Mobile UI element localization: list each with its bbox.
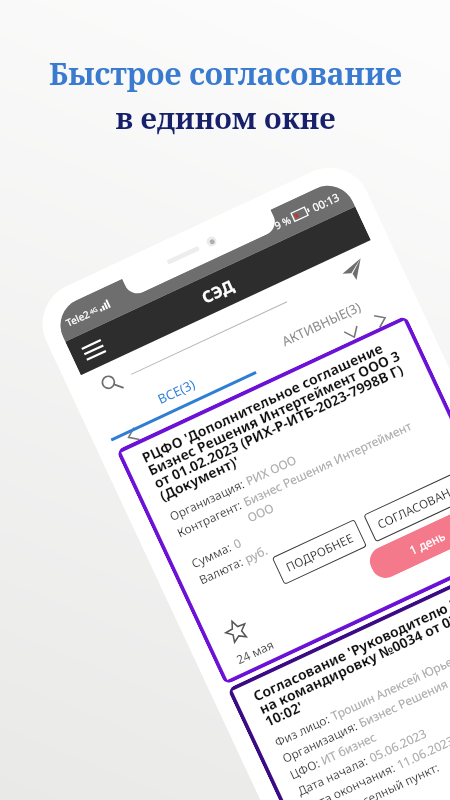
staticText: Дата окончания:: [302, 759, 398, 800]
staticText: Валюта:: [196, 553, 246, 588]
staticText: Город, населный пункт:: [310, 758, 442, 800]
staticText: 05.06.2023: [364, 725, 429, 767]
button[interactable]: АКТИВНЫЕ(3): [243, 276, 400, 371]
staticText: Контрагент:: [174, 496, 244, 540]
staticText: ПОДРОБНЕЕ: [283, 529, 356, 575]
staticText: АКТИВНЫЕ(3): [279, 297, 364, 350]
button[interactable]: Search: [98, 370, 124, 397]
button[interactable]: Согласование 'Руководителю 'Заявка на ко…: [232, 559, 450, 800]
staticText: 0: [228, 534, 243, 553]
button[interactable]: ПОДРОБНЕЕ: [272, 519, 367, 585]
staticText: 1 день: [406, 527, 448, 558]
staticText: 24 мая: [233, 636, 276, 667]
staticText: Трошин Алексей Юрьевич: [325, 644, 450, 725]
staticText: Бизнес Решения Интертеймент ООО: [238, 406, 444, 525]
staticText: Сумма:: [189, 538, 234, 571]
staticText: РЦФО 'Дополнительное соглашение Бизнес Р…: [139, 330, 421, 505]
staticText: Дата начала:: [295, 752, 370, 799]
staticText: 00:13: [310, 189, 342, 215]
staticText: СОГЛАСОВАНО: [374, 480, 450, 532]
button[interactable]: ВСЕ(3): [98, 344, 255, 439]
button[interactable]: РЦФО 'Дополнительное соглашение Бизнес Р…: [121, 321, 450, 680]
staticText: Организация:: [279, 717, 360, 766]
staticText: 4G: [88, 305, 99, 316]
staticText: СЭД: [198, 274, 238, 308]
staticText: Согласование 'Руководителю 'Заявка на ко…: [250, 568, 450, 731]
staticText: Быстрое согласование: [49, 53, 402, 94]
staticText: Организация:: [167, 475, 247, 524]
staticText: 11.06.2023: [391, 732, 450, 774]
staticText: руб.: [239, 542, 270, 568]
staticText: ЦФО:: [287, 755, 322, 782]
button[interactable]: 1 день: [365, 502, 450, 583]
staticText: РИХ ООО: [240, 451, 299, 490]
staticText: Бизнес Решения: [353, 675, 450, 732]
button[interactable]: СОГЛАСОВАНО: [363, 470, 450, 542]
staticText: ВСЕ(3): [155, 375, 199, 408]
staticText: в едином окне: [115, 98, 336, 137]
button[interactable]: Send: [336, 253, 370, 288]
button[interactable]: Menu: [75, 331, 112, 368]
staticText: 9 %: [272, 213, 293, 233]
staticText: Физ лицо:: [272, 710, 332, 750]
staticText: Tele2: [64, 306, 92, 330]
staticText: ИТ бизнес: [315, 728, 379, 769]
